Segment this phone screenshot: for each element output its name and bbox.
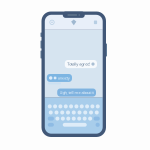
button[interactable]: anxiety — [47, 74, 72, 82]
button[interactable]: Profile — [47, 17, 57, 27]
button[interactable]: Brand — [69, 17, 79, 27]
staticText: Ugh, tell me about it — [60, 90, 94, 95]
button[interactable]: Totally agree! — [65, 60, 97, 68]
staticText: anxiety — [58, 75, 70, 81]
button[interactable]: Menu — [90, 17, 100, 27]
staticText: Totally agree! — [67, 61, 90, 67]
button[interactable]: Ugh, tell me about it — [57, 88, 96, 97]
